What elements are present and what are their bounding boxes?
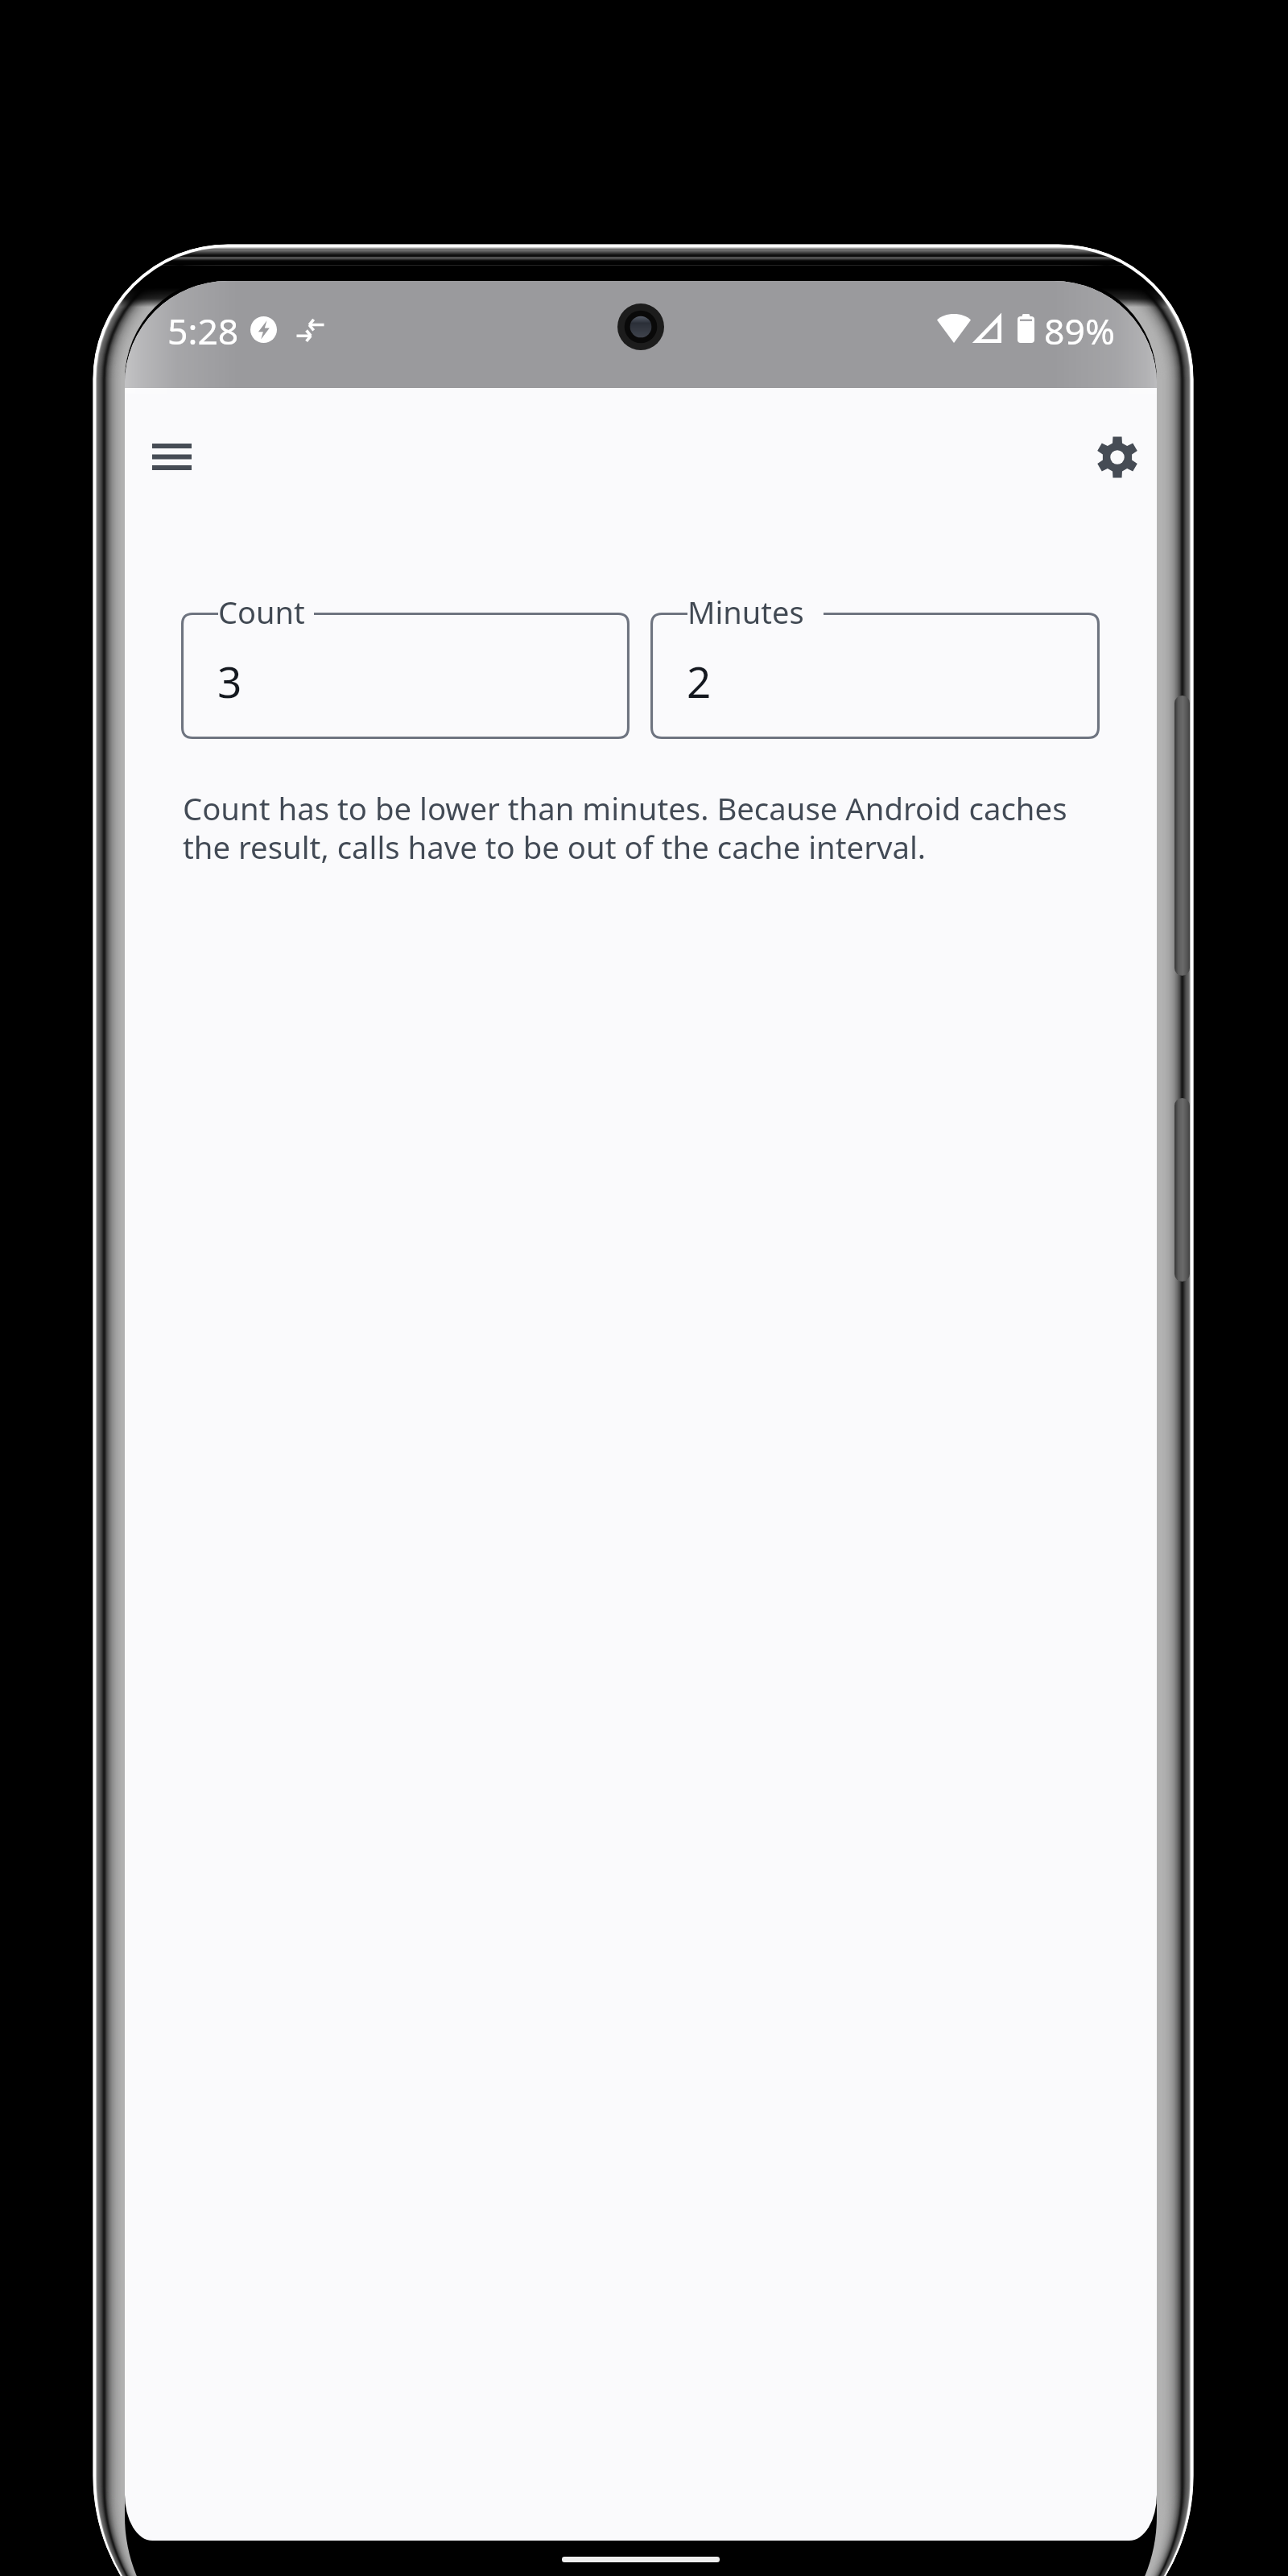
staticText: Minutes — [687, 591, 804, 633]
staticText: Count has to be lower than minutes. Beca… — [183, 787, 1110, 869]
staticText: 2 — [687, 652, 712, 710]
staticText: 3 — [217, 652, 242, 710]
staticText: 5:28 — [167, 306, 239, 355]
button[interactable]: Settings — [1067, 407, 1157, 507]
staticText: 89% — [1044, 306, 1115, 355]
button[interactable]: Open navigation menu — [125, 407, 221, 506]
staticText: Count — [218, 591, 305, 633]
button[interactable]: Minutes — [650, 613, 1100, 739]
button[interactable]: Count — [181, 613, 630, 739]
